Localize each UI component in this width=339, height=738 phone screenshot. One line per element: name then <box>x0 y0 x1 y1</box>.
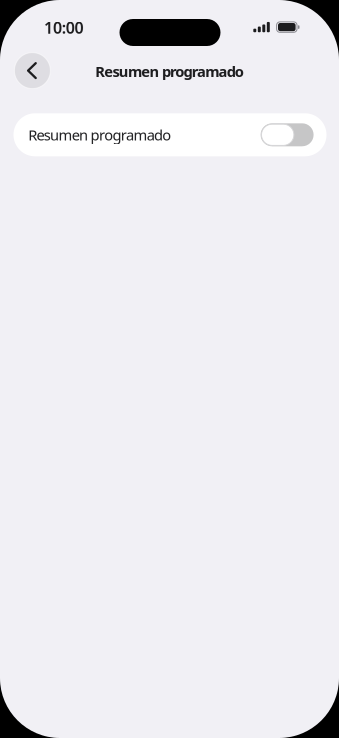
staticText: Resumen programado <box>28 125 171 145</box>
staticText: 10:00 <box>44 17 84 38</box>
button[interactable]: Resumen programado <box>13 113 326 156</box>
staticText: Resumen programado <box>95 62 244 81</box>
button[interactable]: Back <box>14 53 50 89</box>
